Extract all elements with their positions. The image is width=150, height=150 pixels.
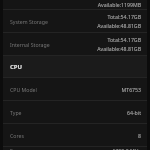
- staticText: Total:54.17GB: [107, 13, 141, 20]
- staticText: Type: [10, 109, 22, 116]
- staticText: Frequency: [10, 147, 36, 150]
- staticText: Available:48.81GB: [97, 45, 141, 52]
- button[interactable]: Available:1199MB: [3, 0, 147, 9]
- button[interactable]: System Storage: [3, 10, 147, 32]
- staticText: Available:48.81GB: [97, 22, 141, 29]
- button[interactable]: Internal Storage: [3, 33, 147, 55]
- staticText: MT6753: [121, 86, 141, 93]
- staticText: Internal Storage: [10, 41, 50, 48]
- staticText: 64-bit: [126, 109, 141, 116]
- staticText: Total:54.17GB: [107, 36, 141, 43]
- staticText: CPU: [10, 63, 23, 71]
- staticText: Cores: [10, 132, 24, 139]
- staticText: System Storage: [10, 18, 48, 25]
- staticText: 1300.0 MHz: [112, 147, 141, 150]
- button[interactable]: Type: [3, 101, 147, 123]
- staticText: 8: [138, 132, 141, 139]
- staticText: CPU Model: [10, 86, 37, 93]
- staticText: Available:1199MB: [97, 1, 141, 8]
- button[interactable]: Cores: [3, 124, 147, 146]
- button[interactable]: Frequency: [3, 147, 147, 150]
- button[interactable]: CPU Model: [3, 78, 147, 100]
